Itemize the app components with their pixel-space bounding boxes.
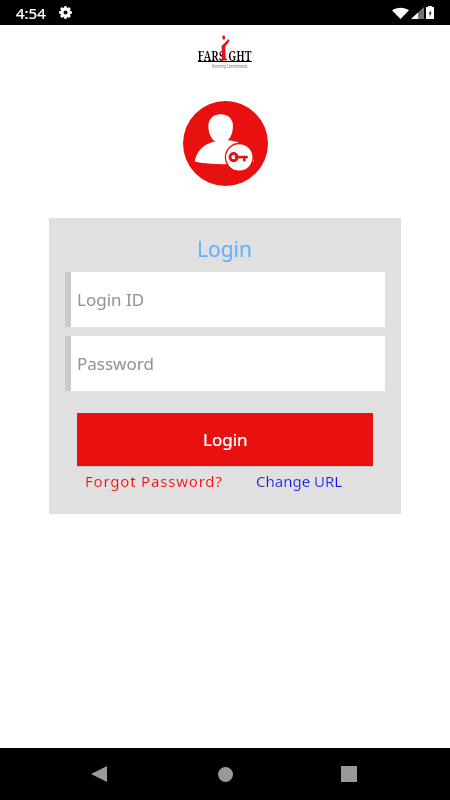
other: User account [183,101,268,186]
button[interactable]: Forgot Password? [81,468,227,494]
button[interactable]: Back [83,758,115,790]
staticText: Change URL [256,471,343,491]
staticText: GHT [228,46,252,65]
staticText: Login [197,235,253,264]
button[interactable]: Change URL [252,468,347,494]
staticText: Password [77,352,154,375]
staticText: 4:54 [16,3,46,23]
staticText: Honoring Commitments [212,63,248,70]
button[interactable]: Login [77,413,373,466]
button[interactable]: Recent apps [333,758,365,790]
staticText: Login [203,428,248,451]
staticText: FARS [198,46,225,65]
button[interactable]: Login ID [65,272,385,327]
staticText: Login ID [77,288,145,311]
button[interactable]: Password [65,336,385,391]
button[interactable]: Home [209,758,241,790]
staticText: Forgot Password? [85,471,223,491]
